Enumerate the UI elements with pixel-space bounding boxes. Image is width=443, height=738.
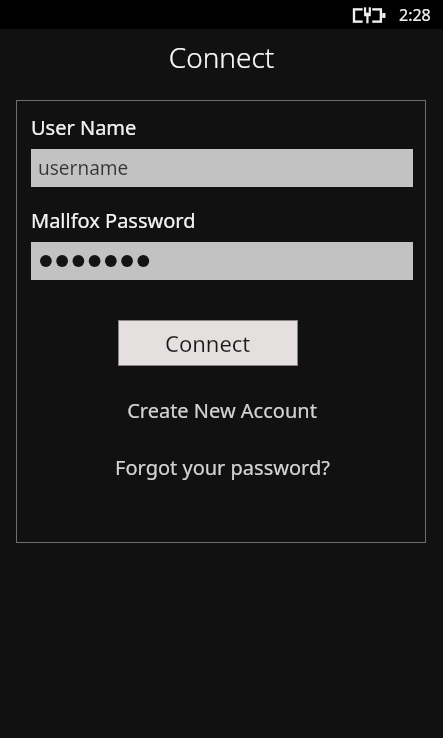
staticText: 2:28	[399, 4, 431, 26]
button[interactable]: Create New Account	[31, 397, 413, 424]
button[interactable]: Connect	[118, 320, 298, 366]
staticText: Connect	[165, 328, 251, 358]
button[interactable]: username	[31, 149, 413, 187]
staticText: Forgot your password?	[115, 454, 330, 481]
staticText: Mallfox Password	[31, 207, 196, 234]
button[interactable]: Forgot your password?	[31, 454, 413, 481]
staticText: Create New Account	[127, 397, 317, 424]
other: Battery charging	[354, 7, 386, 24]
staticText: username	[38, 155, 129, 181]
staticText: Connect	[0, 38, 443, 76]
staticText: User Name	[31, 114, 137, 141]
button[interactable]: Password	[31, 242, 413, 280]
